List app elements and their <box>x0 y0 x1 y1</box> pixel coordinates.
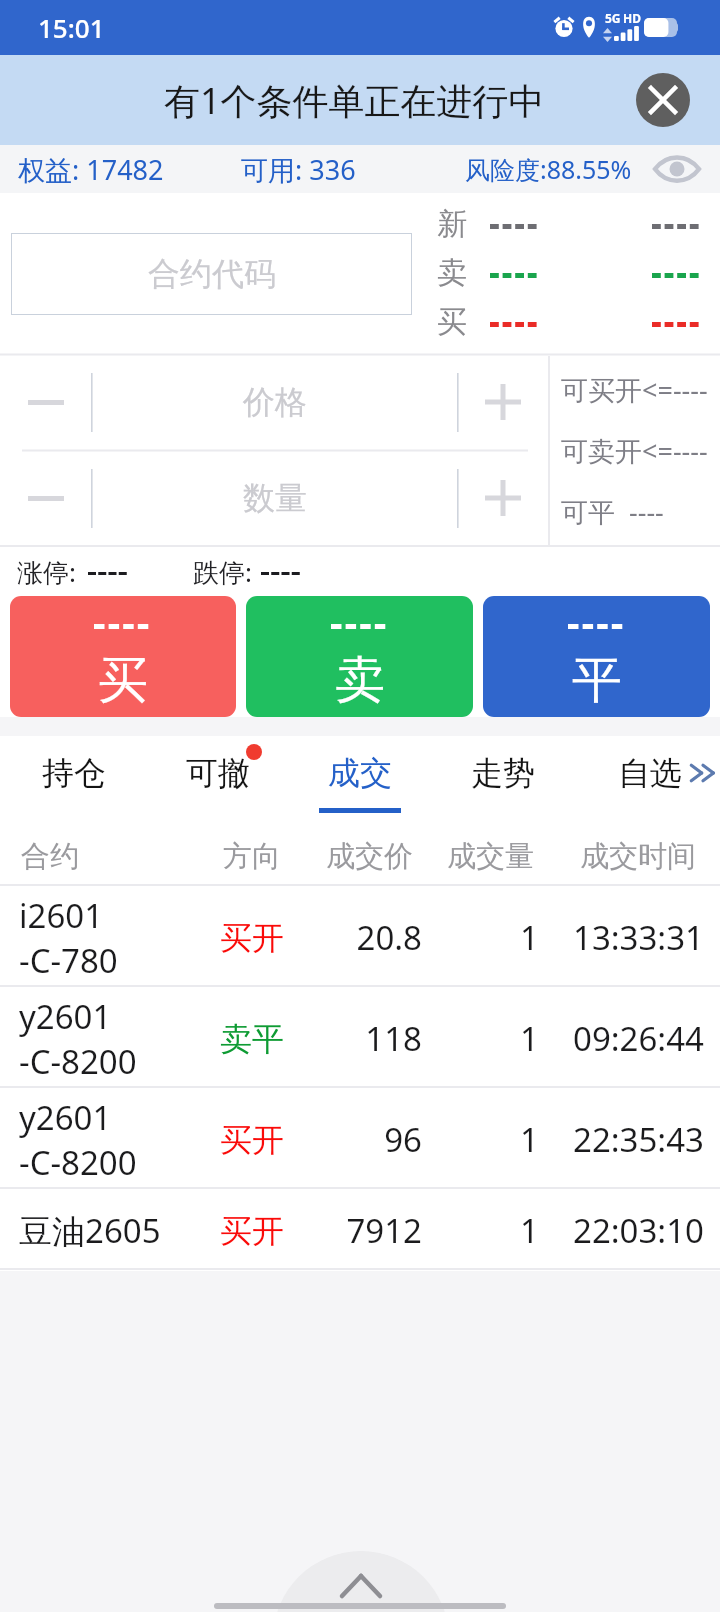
staticText: 平 <box>572 649 622 712</box>
button[interactable]: 数量 <box>92 450 457 546</box>
staticText: 自选 <box>618 753 682 793</box>
staticText: HD <box>623 10 641 26</box>
button[interactable]: 价格 <box>92 354 457 450</box>
staticText: 5G <box>605 10 621 26</box>
button[interactable]: 合约代码 <box>11 233 412 315</box>
staticText: 成交时间 <box>580 838 696 875</box>
staticText: 1 <box>440 915 539 960</box>
staticText: 22:35:43 <box>573 1117 704 1162</box>
staticText: 可平 ---- <box>561 493 664 530</box>
button[interactable]: Close banner <box>636 73 690 127</box>
staticText: 20.8 <box>300 915 422 960</box>
staticText: -C-8200 <box>19 1140 137 1185</box>
staticText: 买开 <box>220 918 284 958</box>
staticText: 1 <box>440 1208 539 1253</box>
staticText: 可卖开<=---- <box>561 432 708 469</box>
staticText: 15:01 <box>38 10 105 45</box>
button[interactable]: y2601 <box>0 988 720 1089</box>
staticText: 可用: 336 <box>241 151 356 188</box>
button[interactable]: Decrease 价格 <box>0 354 92 450</box>
button[interactable]: 平 <box>483 596 710 717</box>
staticText: 买开 <box>220 1120 284 1160</box>
staticText: 买开 <box>220 1211 284 1251</box>
staticText: 成交价 <box>326 838 413 875</box>
staticText: 22:03:10 <box>573 1208 704 1253</box>
staticText: 买 <box>98 649 148 712</box>
button[interactable]: i2601 <box>0 887 720 988</box>
staticText: 成交量 <box>447 838 534 875</box>
button[interactable]: Toggle balance visibility <box>653 145 701 193</box>
button[interactable]: 走势 <box>443 736 563 825</box>
staticText: 96 <box>300 1117 422 1162</box>
staticText: 持仓 <box>42 753 106 793</box>
button[interactable]: 持仓 <box>14 736 134 825</box>
staticText: 数量 <box>243 478 307 518</box>
button[interactable]: 买 <box>10 596 236 717</box>
staticText: 118 <box>300 1016 422 1061</box>
staticText: 7912 <box>300 1208 422 1253</box>
staticText: 卖平 <box>220 1019 284 1059</box>
staticText: 风险度:88.55% <box>465 152 632 186</box>
button[interactable]: 成交 <box>300 736 420 825</box>
button[interactable]: 卖 <box>246 596 473 717</box>
button[interactable]: Expand panel <box>273 1551 449 1612</box>
staticText: 合约代码 <box>148 254 276 294</box>
staticText: 跌停: <box>193 554 252 590</box>
button[interactable]: y2601 <box>0 1089 720 1190</box>
staticText: 1 <box>440 1016 539 1061</box>
staticText: 成交 <box>328 753 392 793</box>
staticText: 豆油2605 <box>19 1208 161 1253</box>
button[interactable]: 自选 <box>590 736 710 825</box>
staticText: 合约 <box>21 838 79 875</box>
staticText: y2601 <box>19 994 112 1039</box>
staticText: 权益: 17482 <box>18 151 164 188</box>
button[interactable]: Increase 价格 <box>457 354 549 450</box>
staticText: 卖 <box>437 254 467 292</box>
button[interactable]: More tabs <box>686 736 720 825</box>
staticText: 买 <box>437 303 467 341</box>
staticText: 方向 <box>223 838 281 875</box>
staticText: 走势 <box>471 753 535 793</box>
staticText: -C-780 <box>19 938 118 983</box>
button[interactable]: Decrease 数量 <box>0 450 92 546</box>
staticText: 有1个条件单正在进行中 <box>164 76 545 125</box>
staticText: 新 <box>437 205 467 243</box>
staticText: 涨停: <box>17 554 76 590</box>
button[interactable]: 豆油2605 <box>0 1190 720 1271</box>
button[interactable]: Increase 数量 <box>457 450 549 546</box>
staticText: 13:33:31 <box>573 915 704 960</box>
button[interactable]: 可撤 <box>158 736 278 825</box>
staticText: 09:26:44 <box>573 1016 704 1061</box>
staticText: y2601 <box>19 1095 112 1140</box>
staticText: 可撤 <box>186 753 250 793</box>
staticText: 价格 <box>243 382 307 422</box>
staticText: 1 <box>440 1117 539 1162</box>
staticText: i2601 <box>19 893 104 938</box>
staticText: -C-8200 <box>19 1039 137 1084</box>
staticText: 卖 <box>335 649 385 712</box>
staticText: 可买开<=---- <box>561 371 708 408</box>
